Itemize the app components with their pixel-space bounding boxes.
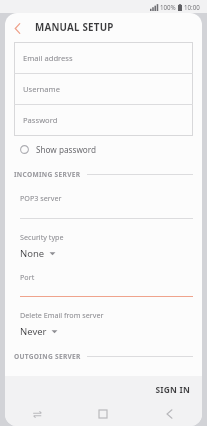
button[interactable]: Back [136,402,202,426]
button[interactable]: Recents [5,402,70,426]
staticText: 100% [160,3,176,11]
staticText: None [20,247,45,260]
button[interactable]: Username [15,74,192,104]
button[interactable]: Show password [14,136,193,162]
staticText: MANUAL SETUP [35,21,114,34]
staticText: OUTGOING SERVER [14,352,81,361]
staticText: Show password [36,144,97,155]
staticText: Delete Email from server [20,310,104,320]
button[interactable]: Delete Email from server [20,297,193,338]
staticText: Email address [23,53,73,63]
button[interactable]: SIGN IN [143,376,202,402]
staticText: SIGN IN [155,384,190,395]
staticText: Security type [20,232,64,242]
staticText: Username [23,84,60,94]
button[interactable]: Port [20,264,193,297]
button[interactable]: Password [15,105,192,135]
staticText: 10:00 [184,3,200,11]
button[interactable]: Home [70,402,136,426]
staticText: Port [20,272,35,282]
button[interactable]: Navigate up [5,16,29,40]
button[interactable]: Email address [15,43,192,73]
staticText: INCOMING SERVER [14,170,81,179]
staticText: POP3 server [20,193,62,203]
button[interactable]: Security type [20,219,193,260]
button[interactable]: POP3 server [20,183,193,219]
staticText: Password [23,115,58,125]
staticText: Never [20,325,47,338]
